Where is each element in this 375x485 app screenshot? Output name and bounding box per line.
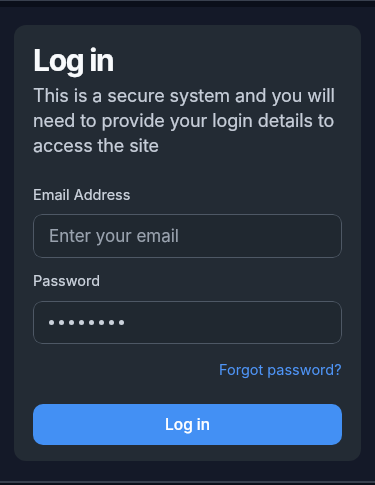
button[interactable]: Log in bbox=[33, 404, 342, 445]
staticText: Forgot password? bbox=[219, 361, 342, 379]
staticText: Email Address bbox=[33, 186, 131, 204]
button[interactable] bbox=[33, 301, 342, 344]
button[interactable]: Enter your email bbox=[33, 214, 342, 258]
staticText: Log in bbox=[165, 415, 211, 434]
staticText: Enter your email bbox=[49, 226, 179, 247]
staticText: Log in bbox=[33, 42, 114, 78]
button[interactable]: Forgot password? bbox=[219, 361, 342, 379]
staticText: This is a secure system and you will nee… bbox=[33, 85, 335, 156]
staticText: Password bbox=[33, 272, 101, 290]
